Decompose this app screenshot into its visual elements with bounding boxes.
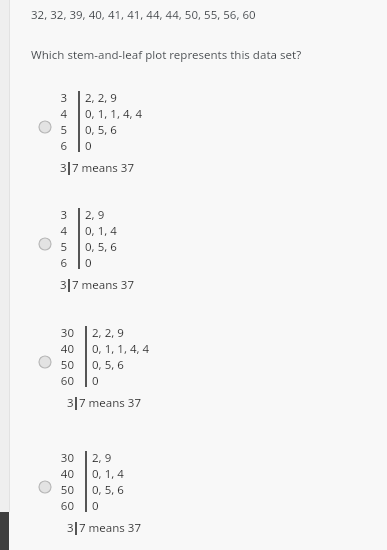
staticText: 3 xyxy=(67,520,74,536)
staticText: 0 xyxy=(92,498,99,514)
staticText: 0, 1, 1, 4, 4 xyxy=(85,106,143,122)
staticText: 50 xyxy=(34,482,74,498)
staticText: 7 means 37 xyxy=(79,395,142,411)
staticText: 30 xyxy=(34,450,74,466)
staticText: 5 xyxy=(27,239,67,255)
staticText: 0, 1, 4 xyxy=(92,466,124,482)
button[interactable]: Answer option 2 xyxy=(30,203,230,303)
staticText: 7 means 37 xyxy=(79,520,142,536)
staticText: 6 xyxy=(27,138,67,154)
staticText: 60 xyxy=(34,498,74,514)
staticText: 4 xyxy=(27,223,67,239)
staticText: 0 xyxy=(92,373,99,389)
staticText: 30 xyxy=(34,325,74,341)
staticText: 3 xyxy=(60,160,67,176)
staticText: 7 means 37 xyxy=(72,277,135,293)
staticText: 2, 2, 9 xyxy=(85,90,117,106)
staticText: 4 xyxy=(27,106,67,122)
button[interactable]: Answer option 1 xyxy=(30,86,230,186)
staticText: 0, 5, 6 xyxy=(85,122,117,138)
staticText: 0 xyxy=(85,138,92,154)
staticText: 2, 9 xyxy=(85,207,105,223)
staticText: 6 xyxy=(27,255,67,271)
staticText: 0, 1, 4 xyxy=(85,223,117,239)
staticText: 2, 9 xyxy=(92,450,112,466)
staticText: 5 xyxy=(27,122,67,138)
staticText: Which stem-and-leaf plot represents this… xyxy=(31,47,302,63)
staticText: 2, 2, 9 xyxy=(92,325,124,341)
staticText: 60 xyxy=(34,373,74,389)
staticText: 0 xyxy=(85,255,92,271)
button[interactable]: Select option 2 xyxy=(38,237,52,251)
staticText: 0, 5, 6 xyxy=(85,239,117,255)
button[interactable]: Select option 4 xyxy=(38,480,52,494)
staticText: 0, 5, 6 xyxy=(92,357,124,373)
staticText: 3 xyxy=(27,90,67,106)
button[interactable]: Select option 3 xyxy=(38,355,52,369)
staticText: 3 xyxy=(60,277,67,293)
staticText: 40 xyxy=(34,341,74,357)
staticText: 7 means 37 xyxy=(72,160,135,176)
button[interactable]: Answer option 4 xyxy=(30,446,230,546)
staticText: 3 xyxy=(67,395,74,411)
staticText: 32, 32, 39, 40, 41, 41, 44, 44, 50, 55, … xyxy=(31,7,256,23)
staticText: 0, 1, 1, 4, 4 xyxy=(92,341,150,357)
staticText: 0, 5, 6 xyxy=(92,482,124,498)
button[interactable]: Answer option 3 xyxy=(30,321,230,421)
button[interactable]: Select option 1 xyxy=(38,120,52,134)
staticText: 40 xyxy=(34,466,74,482)
staticText: 50 xyxy=(34,357,74,373)
staticText: 3 xyxy=(27,207,67,223)
